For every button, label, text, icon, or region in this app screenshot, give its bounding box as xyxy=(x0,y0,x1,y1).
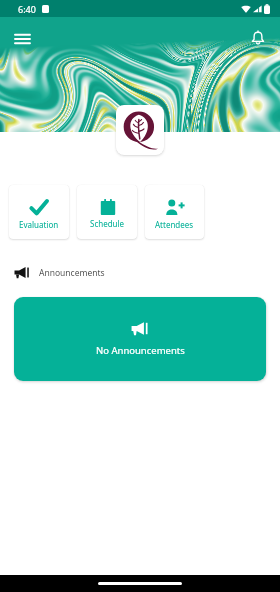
button[interactable]: Attendees xyxy=(145,185,204,239)
staticText: Attendees xyxy=(155,219,194,230)
button[interactable]: Evaluation xyxy=(9,185,69,239)
button[interactable]: Notifications xyxy=(242,21,274,53)
staticText: No Announcements xyxy=(96,344,185,357)
staticText: Evaluation xyxy=(19,219,59,230)
button[interactable]: Open navigation menu xyxy=(6,23,38,55)
button[interactable]: Schedule xyxy=(77,185,137,239)
staticText: Schedule xyxy=(90,218,125,229)
staticText: 6:40 xyxy=(18,3,36,15)
button[interactable]: No Announcements xyxy=(14,297,266,381)
staticText: Announcements xyxy=(39,267,105,279)
